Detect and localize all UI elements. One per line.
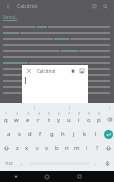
button[interactable]: .	[91, 155, 100, 171]
button[interactable]: l	[90, 127, 101, 141]
staticText: 8	[78, 112, 80, 116]
button[interactable]: Back	[0, 171, 31, 182]
button[interactable]: j	[68, 127, 79, 141]
button[interactable]	[22, 76, 88, 103]
staticText: t	[48, 116, 51, 124]
staticText: ?	[96, 145, 99, 152]
button[interactable]: 6	[54, 112, 64, 127]
button[interactable]: 2	[11, 112, 22, 127]
button[interactable]: Shift	[102, 141, 114, 155]
button[interactable]: Enter	[103, 127, 114, 141]
button[interactable]: Voice input	[100, 155, 114, 171]
staticText: 3	[27, 112, 29, 116]
staticText: v	[45, 144, 49, 152]
staticText: f	[39, 130, 42, 138]
staticText: ?123	[5, 161, 13, 166]
staticText: j	[73, 130, 75, 138]
staticText: c	[36, 144, 39, 152]
staticText: q	[4, 116, 8, 124]
button[interactable]: 0	[94, 112, 104, 127]
staticText: 2	[16, 112, 18, 116]
staticText: e	[26, 116, 30, 124]
staticText: 9	[88, 112, 90, 116]
button[interactable]: g	[46, 127, 57, 141]
button[interactable]	[26, 155, 91, 171]
button[interactable]: Recent apps	[63, 171, 95, 182]
button[interactable]: x	[22, 141, 32, 155]
staticText: 0	[98, 112, 100, 116]
button[interactable]: Home	[31, 171, 63, 182]
staticText: Calcitriol	[17, 3, 38, 10]
staticText: z	[16, 144, 19, 152]
button[interactable]: h	[57, 127, 68, 141]
button[interactable]: !	[82, 141, 92, 155]
button[interactable]: s	[14, 127, 24, 141]
button[interactable]: k	[79, 127, 90, 141]
button[interactable]: Search	[100, 1, 111, 12]
button[interactable]: Bookmark	[89, 1, 100, 12]
button[interactable]: ?123	[0, 155, 17, 171]
staticText: k	[83, 130, 87, 138]
staticText: 1	[5, 112, 7, 116]
button[interactable]: 3	[22, 112, 33, 127]
button[interactable]: 9	[84, 112, 94, 127]
button[interactable]: 7	[64, 112, 74, 127]
button[interactable]: More options	[104, 103, 114, 112]
staticText: !	[86, 145, 88, 152]
button[interactable]: a	[4, 127, 14, 141]
button[interactable]: f	[35, 127, 46, 141]
staticText: x	[25, 144, 29, 152]
button[interactable]: z	[12, 141, 22, 155]
button[interactable]: 4	[33, 112, 44, 127]
staticText: 6	[58, 112, 60, 116]
staticText: w	[14, 116, 19, 124]
staticText: Calcitriol	[37, 68, 56, 74]
staticText: l	[95, 130, 97, 138]
staticText: n	[65, 144, 69, 152]
button[interactable]: Close	[24, 66, 33, 75]
button[interactable]: c	[32, 141, 42, 155]
staticText: .	[95, 160, 97, 167]
staticText: g	[50, 130, 54, 138]
button[interactable]: Backspace	[104, 112, 114, 127]
staticText: h	[61, 130, 65, 138]
button[interactable]: b	[52, 141, 62, 155]
staticText: y	[57, 116, 61, 124]
staticText: 5	[48, 112, 50, 116]
staticText: i	[78, 116, 80, 124]
button[interactable]: 5	[44, 112, 54, 127]
staticText: a	[7, 130, 11, 138]
button[interactable]: Save	[77, 66, 86, 75]
staticText: d	[28, 130, 32, 138]
button[interactable]: Shift	[0, 141, 12, 155]
button[interactable]: Back	[3, 1, 14, 12]
button[interactable]: m	[72, 141, 82, 155]
staticText: o	[87, 116, 91, 124]
staticText: ,	[21, 160, 23, 167]
staticText: m	[74, 144, 80, 152]
button[interactable]: 8	[74, 112, 84, 127]
button[interactable]: 1	[0, 112, 11, 127]
button[interactable]: ?	[92, 141, 102, 155]
staticText: s	[18, 130, 21, 138]
staticText: 4	[38, 112, 40, 116]
staticText: Renal…	[3, 14, 19, 20]
button[interactable]: d	[24, 127, 35, 141]
staticText: b	[55, 144, 59, 152]
button[interactable]: n	[62, 141, 72, 155]
button[interactable]: v	[42, 141, 52, 155]
staticText: u	[67, 116, 71, 124]
button[interactable]: Delete	[68, 66, 77, 75]
staticText: r	[37, 116, 40, 124]
staticText: p	[97, 116, 101, 124]
staticText: 7	[68, 112, 70, 116]
button[interactable]: ,	[17, 155, 26, 171]
